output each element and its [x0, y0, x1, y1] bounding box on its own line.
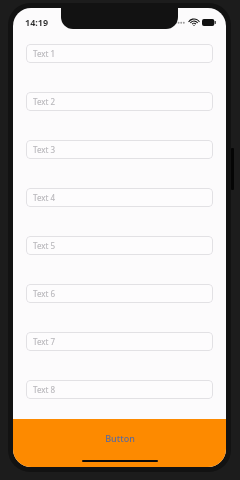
staticText: Text 8: [33, 384, 56, 395]
other: Home indicator: [82, 460, 158, 462]
button[interactable]: Text 1: [26, 44, 213, 63]
staticText: Text 7: [33, 336, 56, 347]
button[interactable]: Text 7: [26, 332, 213, 351]
staticText: Text 5: [33, 240, 56, 251]
button[interactable]: Text 2: [26, 92, 213, 111]
button[interactable]: Text 5: [26, 236, 213, 255]
button[interactable]: Text 6: [26, 284, 213, 303]
staticText: 14:19: [25, 16, 49, 28]
staticText: Text 4: [33, 192, 56, 203]
staticText: Text 3: [33, 144, 56, 155]
button[interactable]: Text 8: [26, 380, 213, 399]
staticText: Button: [105, 432, 135, 444]
staticText: Text 2: [33, 96, 56, 107]
button[interactable]: Text 3: [26, 140, 213, 159]
button[interactable]: Text 4: [26, 188, 213, 207]
staticText: Text 1: [33, 48, 56, 59]
button[interactable]: Button: [13, 419, 226, 467]
staticText: Text 6: [33, 288, 56, 299]
